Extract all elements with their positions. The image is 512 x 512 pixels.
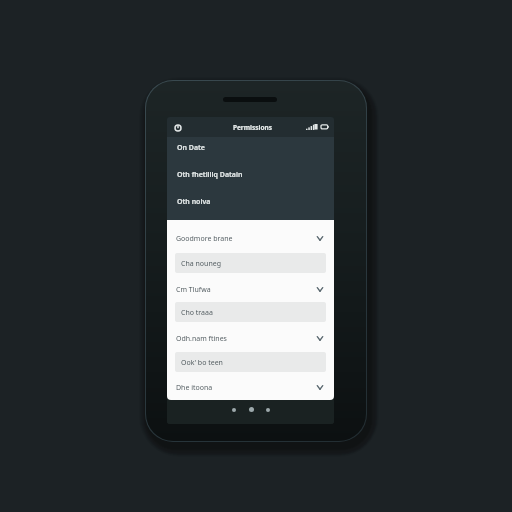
button[interactable]: Back	[228, 400, 240, 419]
staticText: On Date	[177, 143, 205, 153]
staticText: Oth nolva	[177, 197, 211, 207]
button[interactable]: Cm Tlufwa	[167, 273, 334, 302]
staticText: Cm Tlufwa	[176, 285, 316, 295]
button[interactable]: Ook' bo teen	[175, 352, 326, 372]
staticText: Dhe itoona	[176, 383, 316, 393]
button[interactable]: Home	[245, 400, 257, 419]
button[interactable]: Odh.nam ftines	[167, 322, 334, 352]
button[interactable]: Dhe itoona	[167, 372, 334, 400]
staticText: Odh.nam ftines	[176, 334, 316, 344]
staticText: Cho traaa	[181, 308, 213, 318]
staticText: Cha nouneg	[181, 259, 221, 269]
staticText: Permissions	[191, 123, 314, 132]
button[interactable]: Goodmore brane	[167, 220, 334, 253]
staticText: Goodmore brane	[176, 234, 316, 244]
button[interactable]: Cho traaa	[175, 302, 326, 322]
button[interactable]: Recents	[262, 400, 274, 419]
button[interactable]: Oth nolva	[167, 188, 334, 215]
staticText: Oth fhetllllq Datain	[177, 170, 243, 180]
button[interactable]: On Date	[167, 134, 334, 161]
staticText: Ook' bo teen	[181, 358, 223, 368]
button[interactable]: Menu	[172, 122, 183, 133]
button[interactable]: Cha nouneg	[175, 253, 326, 273]
button[interactable]: Oth fhetllllq Datain	[167, 161, 334, 188]
